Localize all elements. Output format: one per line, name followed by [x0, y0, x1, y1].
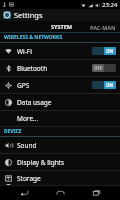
staticText: GPS: [17, 81, 92, 90]
button[interactable]: Toggle off: [92, 64, 116, 72]
staticText: More...: [17, 114, 39, 123]
button[interactable]: Display & lights: [0, 154, 120, 170]
staticText: SYSTEM: [51, 23, 72, 30]
button[interactable]: Recent apps: [84, 185, 108, 200]
staticText: ON: [106, 48, 114, 54]
staticText: OFF: [94, 65, 103, 71]
button[interactable]: Data usage: [0, 94, 120, 110]
button[interactable]: Toggle on: [92, 47, 116, 55]
button[interactable]: Back: [12, 185, 36, 200]
button[interactable]: Settings: [0, 9, 120, 21]
staticText: Settings: [14, 10, 43, 20]
button[interactable]: Storage: [0, 171, 120, 185]
button[interactable]: Sound: [0, 137, 120, 153]
button[interactable]: More...: [0, 111, 120, 126]
staticText: Storage: [17, 174, 116, 183]
button[interactable]: GPS: [0, 77, 120, 93]
staticText: PAC-MAN: [90, 24, 116, 31]
staticText: WIRELESS & NETWORKS: [4, 34, 63, 41]
button[interactable]: Home: [48, 185, 72, 200]
staticText: Bluetooth: [17, 64, 92, 73]
button[interactable]: Toggle on: [92, 81, 116, 89]
staticText: Display & lights: [17, 158, 116, 167]
button[interactable]: Wi-Fi: [0, 43, 120, 59]
staticText: Sound: [17, 141, 116, 150]
button[interactable]: Bluetooth: [0, 60, 120, 76]
staticText: Data usage: [17, 98, 116, 107]
staticText: ON: [106, 82, 114, 88]
staticText: Wi-Fi: [17, 47, 92, 56]
staticText: DEVICE: [4, 128, 22, 135]
button[interactable]: SYSTEM: [36, 21, 86, 33]
staticText: 23:24: [102, 1, 118, 9]
button[interactable]: PAC-MAN: [86, 21, 120, 33]
